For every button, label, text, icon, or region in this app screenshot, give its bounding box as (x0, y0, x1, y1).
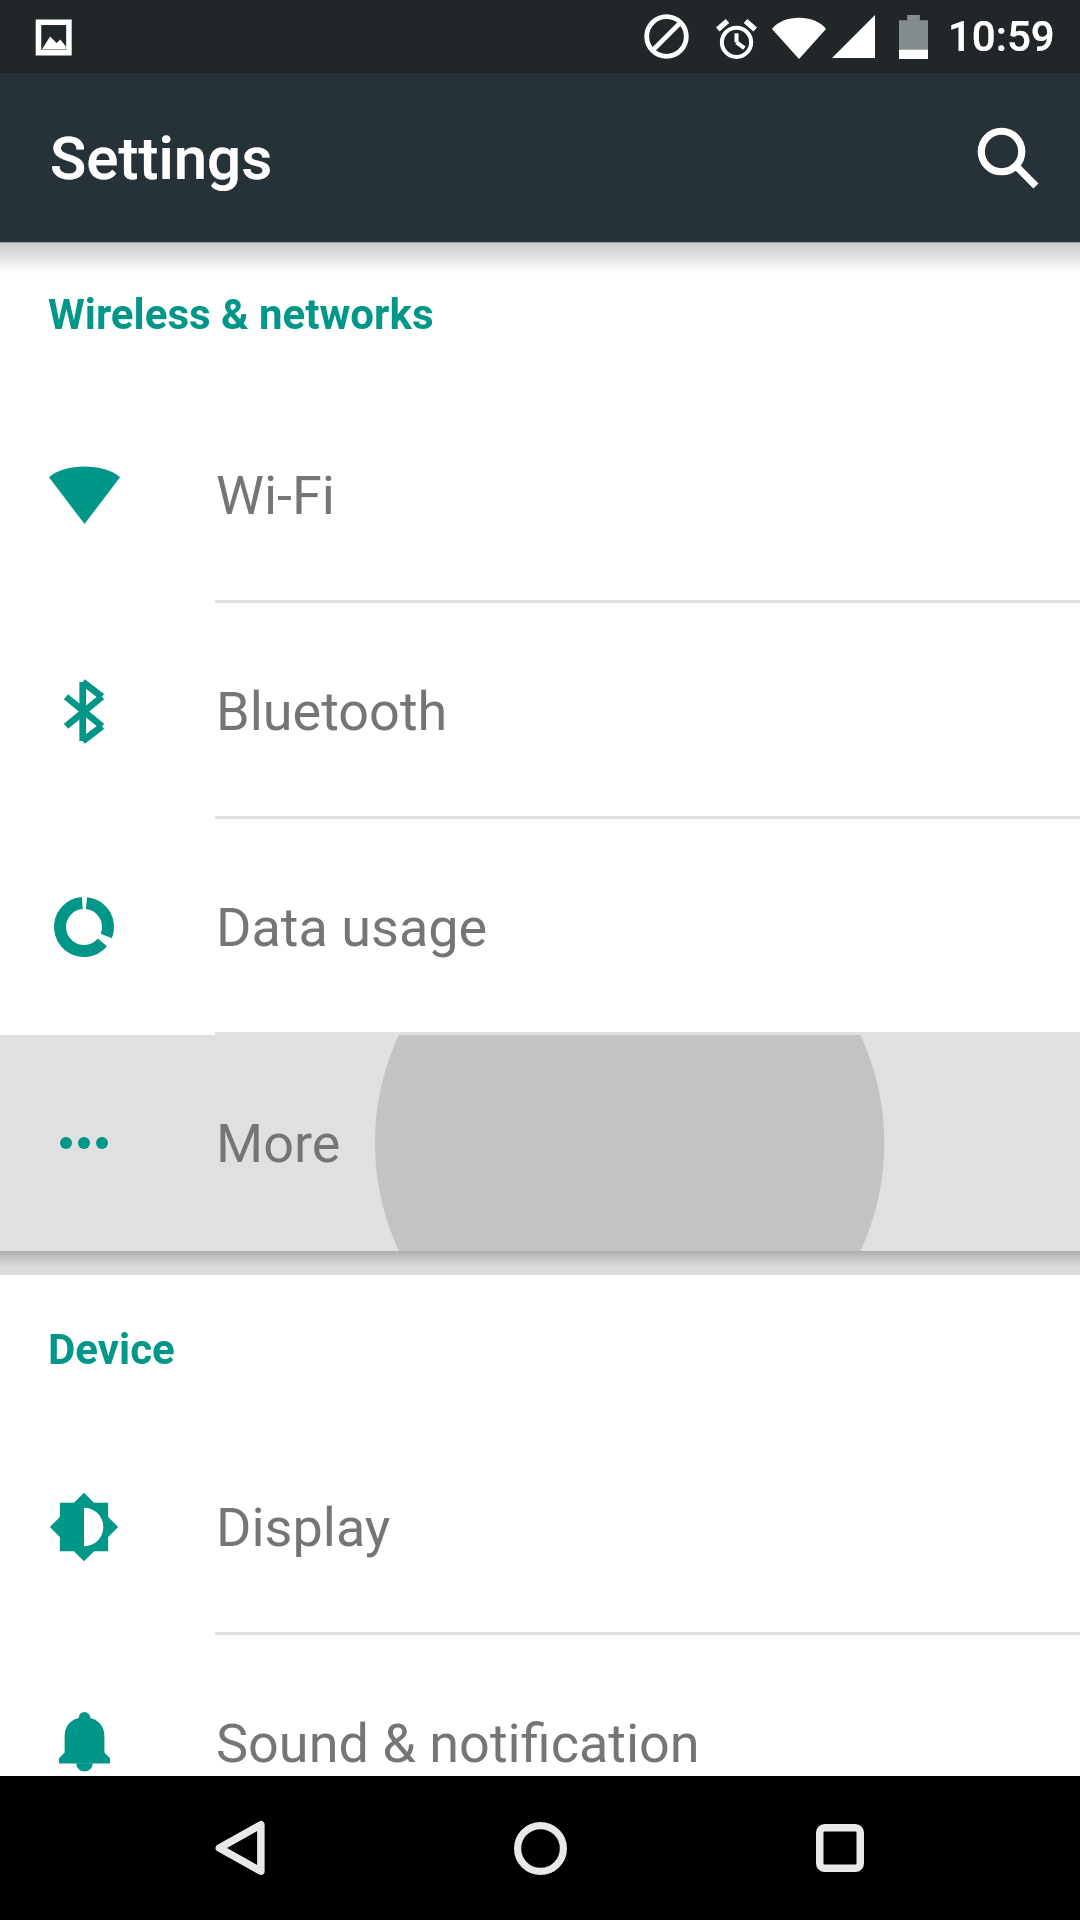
button[interactable]: Recent apps (768, 1776, 912, 1920)
button[interactable]: More (0, 1035, 1080, 1251)
button[interactable]: Data usage (0, 819, 1080, 1035)
staticText: 10:59 (948, 12, 1055, 61)
button[interactable]: Bluetooth (0, 603, 1080, 819)
staticText: Display (216, 1496, 391, 1559)
staticText: Bluetooth (216, 680, 448, 743)
staticText: Data usage (216, 896, 488, 959)
staticText: Settings (50, 123, 273, 193)
staticText: More (216, 1112, 341, 1175)
staticText: Wi-Fi (216, 464, 335, 527)
button[interactable]: Display (0, 1419, 1080, 1635)
staticText: Sound & notification (216, 1712, 700, 1775)
button[interactable]: Back (168, 1776, 312, 1920)
staticText: Wireless & networks (48, 290, 1080, 339)
button[interactable]: Wi-Fi (0, 387, 1080, 603)
button[interactable]: Sound & notification (0, 1635, 1080, 1776)
button[interactable]: Search (912, 74, 1080, 242)
staticText: Device (48, 1325, 1080, 1374)
button[interactable]: Home (468, 1776, 612, 1920)
